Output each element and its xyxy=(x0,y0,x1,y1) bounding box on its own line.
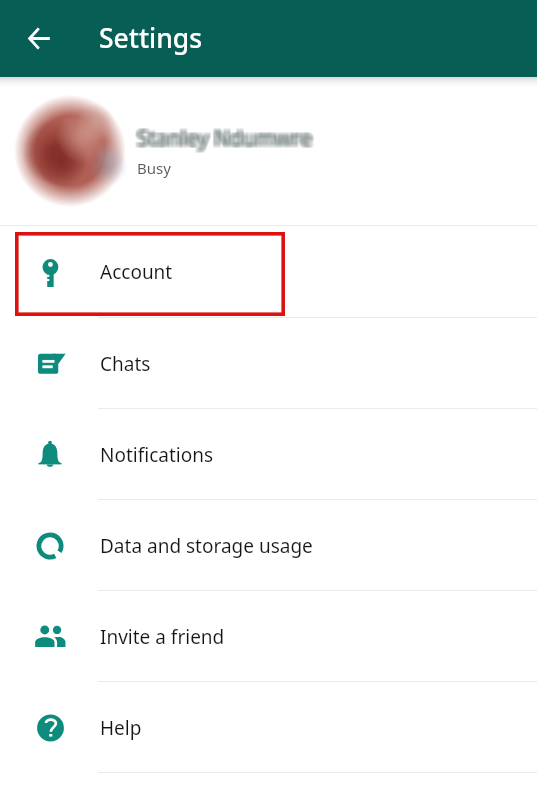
staticText: Stanley Ndumwre xyxy=(139,124,314,153)
staticText: Stanley Ndumwre xyxy=(140,125,315,154)
staticText: Stanley Ndumwre xyxy=(136,124,311,153)
staticText: Stanley Ndumwre xyxy=(138,124,313,153)
staticText: Stanley Ndumwre xyxy=(140,124,315,153)
button[interactable]: Chats xyxy=(0,318,537,409)
staticText: Stanley Ndumwre xyxy=(137,126,312,155)
staticText: Stanley Ndumwre xyxy=(134,126,309,155)
staticText: Stanley Ndumwre xyxy=(139,123,314,152)
staticText: Stanley Ndumwre xyxy=(139,125,314,154)
staticText: Settings xyxy=(99,20,203,56)
staticText: Stanley Ndumwre xyxy=(137,124,312,153)
button[interactable]: Stanley Ndumwre xyxy=(0,77,537,225)
staticText: Stanley Ndumwre xyxy=(138,123,313,152)
button[interactable]: Data and storage usage xyxy=(0,500,537,591)
staticText: Stanley Ndumwre xyxy=(138,126,313,155)
staticText: Stanley Ndumwre xyxy=(135,123,310,152)
staticText: Stanley Ndumwre xyxy=(140,126,315,155)
staticText: Stanley Ndumwre xyxy=(134,125,309,154)
staticText: Stanley Ndumwre xyxy=(134,123,309,152)
staticText: Stanley Ndumwre xyxy=(136,123,311,152)
staticText: Stanley Ndumwre xyxy=(137,125,312,154)
staticText: Stanley Ndumwre xyxy=(139,126,314,155)
staticText: Stanley Ndumwre xyxy=(137,122,312,151)
staticText: Stanley Ndumwre xyxy=(140,122,315,151)
staticText: Stanley Ndumwre xyxy=(140,123,315,152)
staticText: Stanley Ndumwre xyxy=(136,125,311,154)
staticText: Stanley Ndumwre xyxy=(139,122,314,151)
staticText: Busy xyxy=(137,158,171,178)
button[interactable]: Invite a friend xyxy=(0,591,537,682)
staticText: Stanley Ndumwre xyxy=(136,122,311,151)
staticText: Stanley Ndumwre xyxy=(135,125,310,154)
staticText: Stanley Ndumwre xyxy=(135,122,310,151)
staticText: Invite a friend xyxy=(100,624,225,650)
staticText: Stanley Ndumwre xyxy=(138,122,313,151)
button[interactable]: Back xyxy=(17,16,62,61)
staticText: Stanley Ndumwre xyxy=(134,122,309,151)
staticText: Stanley Ndumwre xyxy=(136,126,311,155)
staticText: Stanley Ndumwre xyxy=(135,124,310,153)
staticText: Data and storage usage xyxy=(100,533,313,559)
staticText: Stanley Ndumwre xyxy=(137,123,312,152)
staticText: Help xyxy=(100,715,142,741)
staticText: Notifications xyxy=(100,442,214,468)
staticText: Account xyxy=(100,259,173,285)
staticText: Stanley Ndumwre xyxy=(135,126,310,155)
staticText: Chats xyxy=(100,351,151,377)
staticText: Stanley Ndumwre xyxy=(134,124,309,153)
button[interactable]: Account xyxy=(0,226,537,318)
button[interactable]: Notifications xyxy=(0,409,537,500)
button[interactable]: Help xyxy=(0,682,537,773)
staticText: Stanley Ndumwre xyxy=(138,125,313,154)
